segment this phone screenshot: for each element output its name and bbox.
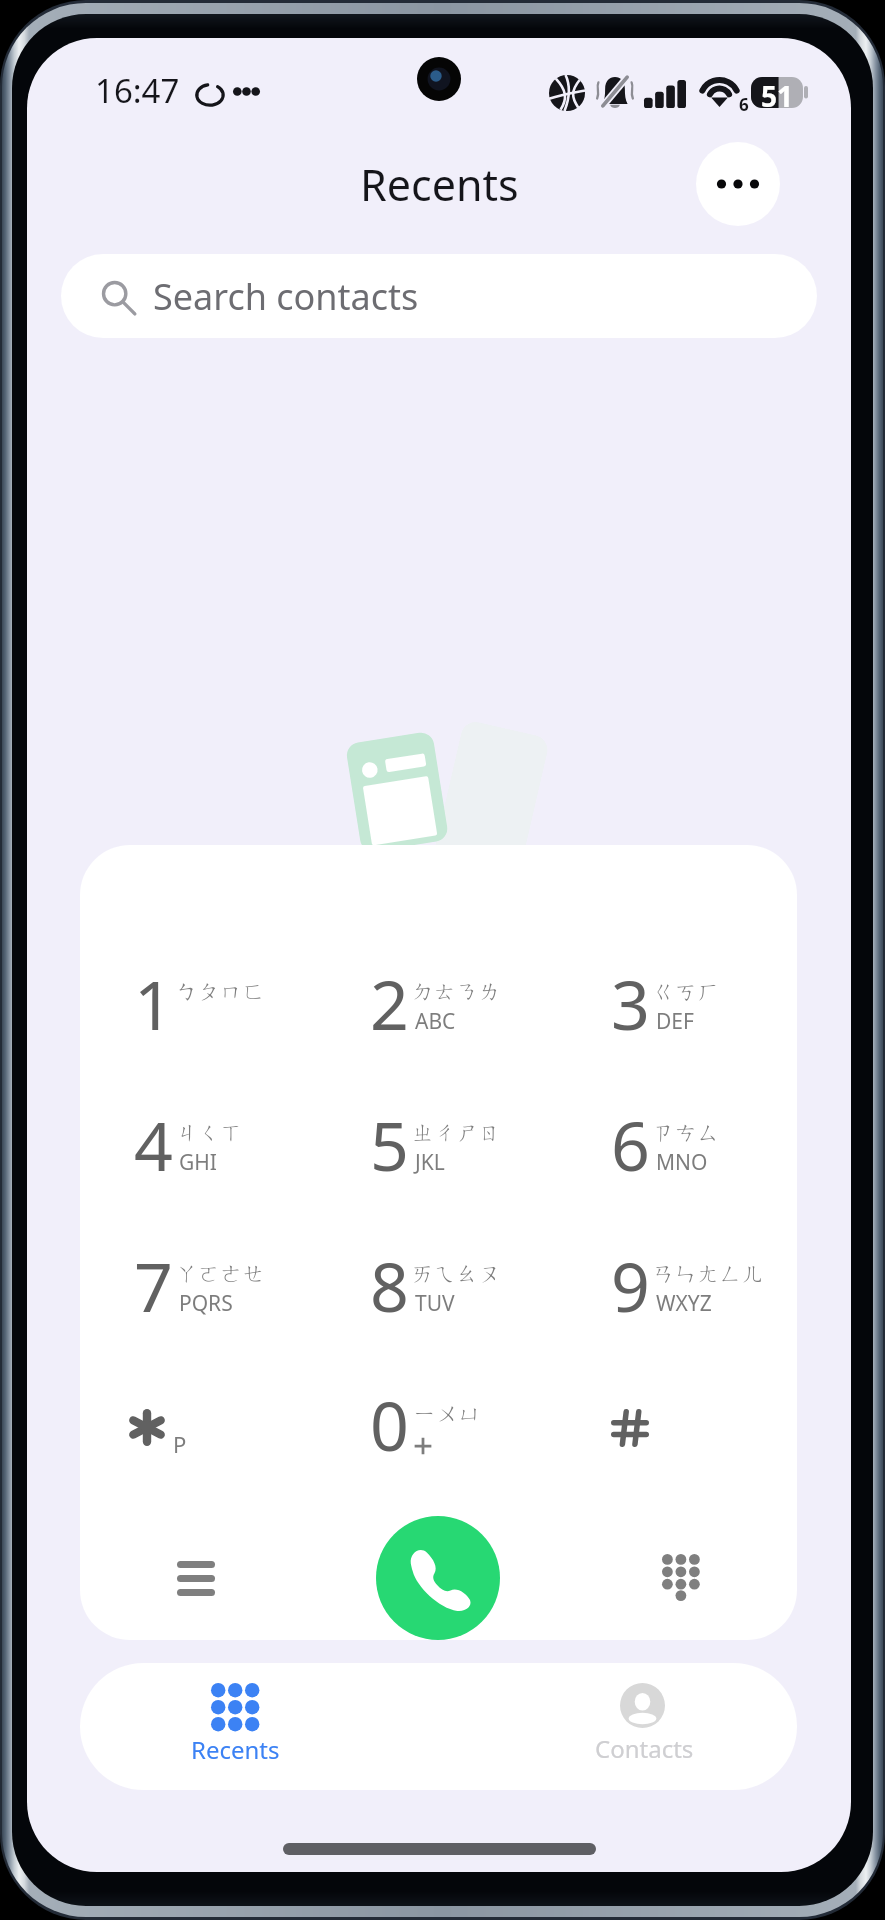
- button[interactable]: 4: [80, 1088, 319, 1206]
- staticText: ㄓㄔㄕㄖ: [412, 1119, 502, 1147]
- staticText: ㄅㄆㄇㄈ: [176, 978, 266, 1006]
- staticText: 5: [370, 1098, 409, 1191]
- button[interactable]: 8: [319, 1229, 558, 1347]
- staticText: 51: [761, 77, 794, 115]
- button[interactable]: 2: [319, 947, 558, 1065]
- staticText: WXYZ: [656, 1289, 712, 1318]
- staticText: Recents: [191, 1733, 280, 1766]
- staticText: ㄐㄑㄒ: [176, 1119, 243, 1147]
- staticText: 3: [611, 957, 650, 1050]
- button[interactable]: 5: [319, 1088, 558, 1206]
- staticText: PQRS: [179, 1289, 233, 1318]
- button[interactable]: 7: [80, 1229, 319, 1347]
- staticText: ㄍㄎㄏ: [653, 978, 720, 1006]
- button[interactable]: Search contacts: [61, 254, 817, 338]
- staticText: ㄚㄛㄜㄝ: [176, 1260, 266, 1288]
- staticText: 9: [611, 1239, 650, 1332]
- staticText: ㄢㄣㄤㄥㄦ: [653, 1260, 765, 1288]
- button[interactable]: Pound: [558, 1370, 797, 1490]
- button[interactable]: 9: [558, 1229, 797, 1347]
- button[interactable]: Call: [376, 1516, 500, 1640]
- staticText: 6: [611, 1098, 650, 1191]
- staticText: P: [173, 1429, 187, 1459]
- staticText: ABC: [415, 1007, 456, 1036]
- staticText: 1: [134, 957, 173, 1050]
- button[interactable]: Call history: [136, 1518, 256, 1638]
- staticText: MNO: [656, 1148, 708, 1177]
- staticText: 6: [739, 93, 749, 116]
- staticText: 4: [134, 1098, 173, 1191]
- button[interactable]: 6: [558, 1088, 797, 1206]
- staticText: 2: [370, 957, 409, 1050]
- staticText: ㄞㄟㄠㄡ: [412, 1260, 502, 1288]
- button[interactable]: 0: [319, 1370, 558, 1490]
- button[interactable]: 3: [558, 947, 797, 1065]
- button[interactable]: Recents: [80, 1663, 438, 1790]
- staticText: 0: [370, 1378, 409, 1471]
- staticText: GHI: [179, 1148, 217, 1177]
- staticText: Recents: [360, 155, 519, 214]
- staticText: JKL: [415, 1148, 445, 1177]
- staticText: 16:47: [95, 68, 180, 113]
- staticText: DEF: [656, 1007, 694, 1036]
- button[interactable]: Star: [80, 1370, 319, 1490]
- button[interactable]: Contacts: [438, 1663, 797, 1790]
- staticText: 7: [134, 1239, 173, 1332]
- button[interactable]: More options: [696, 142, 780, 226]
- staticText: Search contacts: [153, 272, 419, 321]
- staticText: Contacts: [595, 1732, 694, 1765]
- staticText: TUV: [415, 1289, 455, 1318]
- staticText: ㄧㄨㄩ: [414, 1400, 481, 1428]
- button[interactable]: Keypad: [621, 1518, 741, 1638]
- staticText: 8: [370, 1239, 409, 1332]
- staticText: ㄗㄘㄙ: [653, 1119, 720, 1147]
- staticText: ㄉㄊㄋㄌ: [412, 978, 502, 1006]
- button[interactable]: 1: [80, 947, 319, 1065]
